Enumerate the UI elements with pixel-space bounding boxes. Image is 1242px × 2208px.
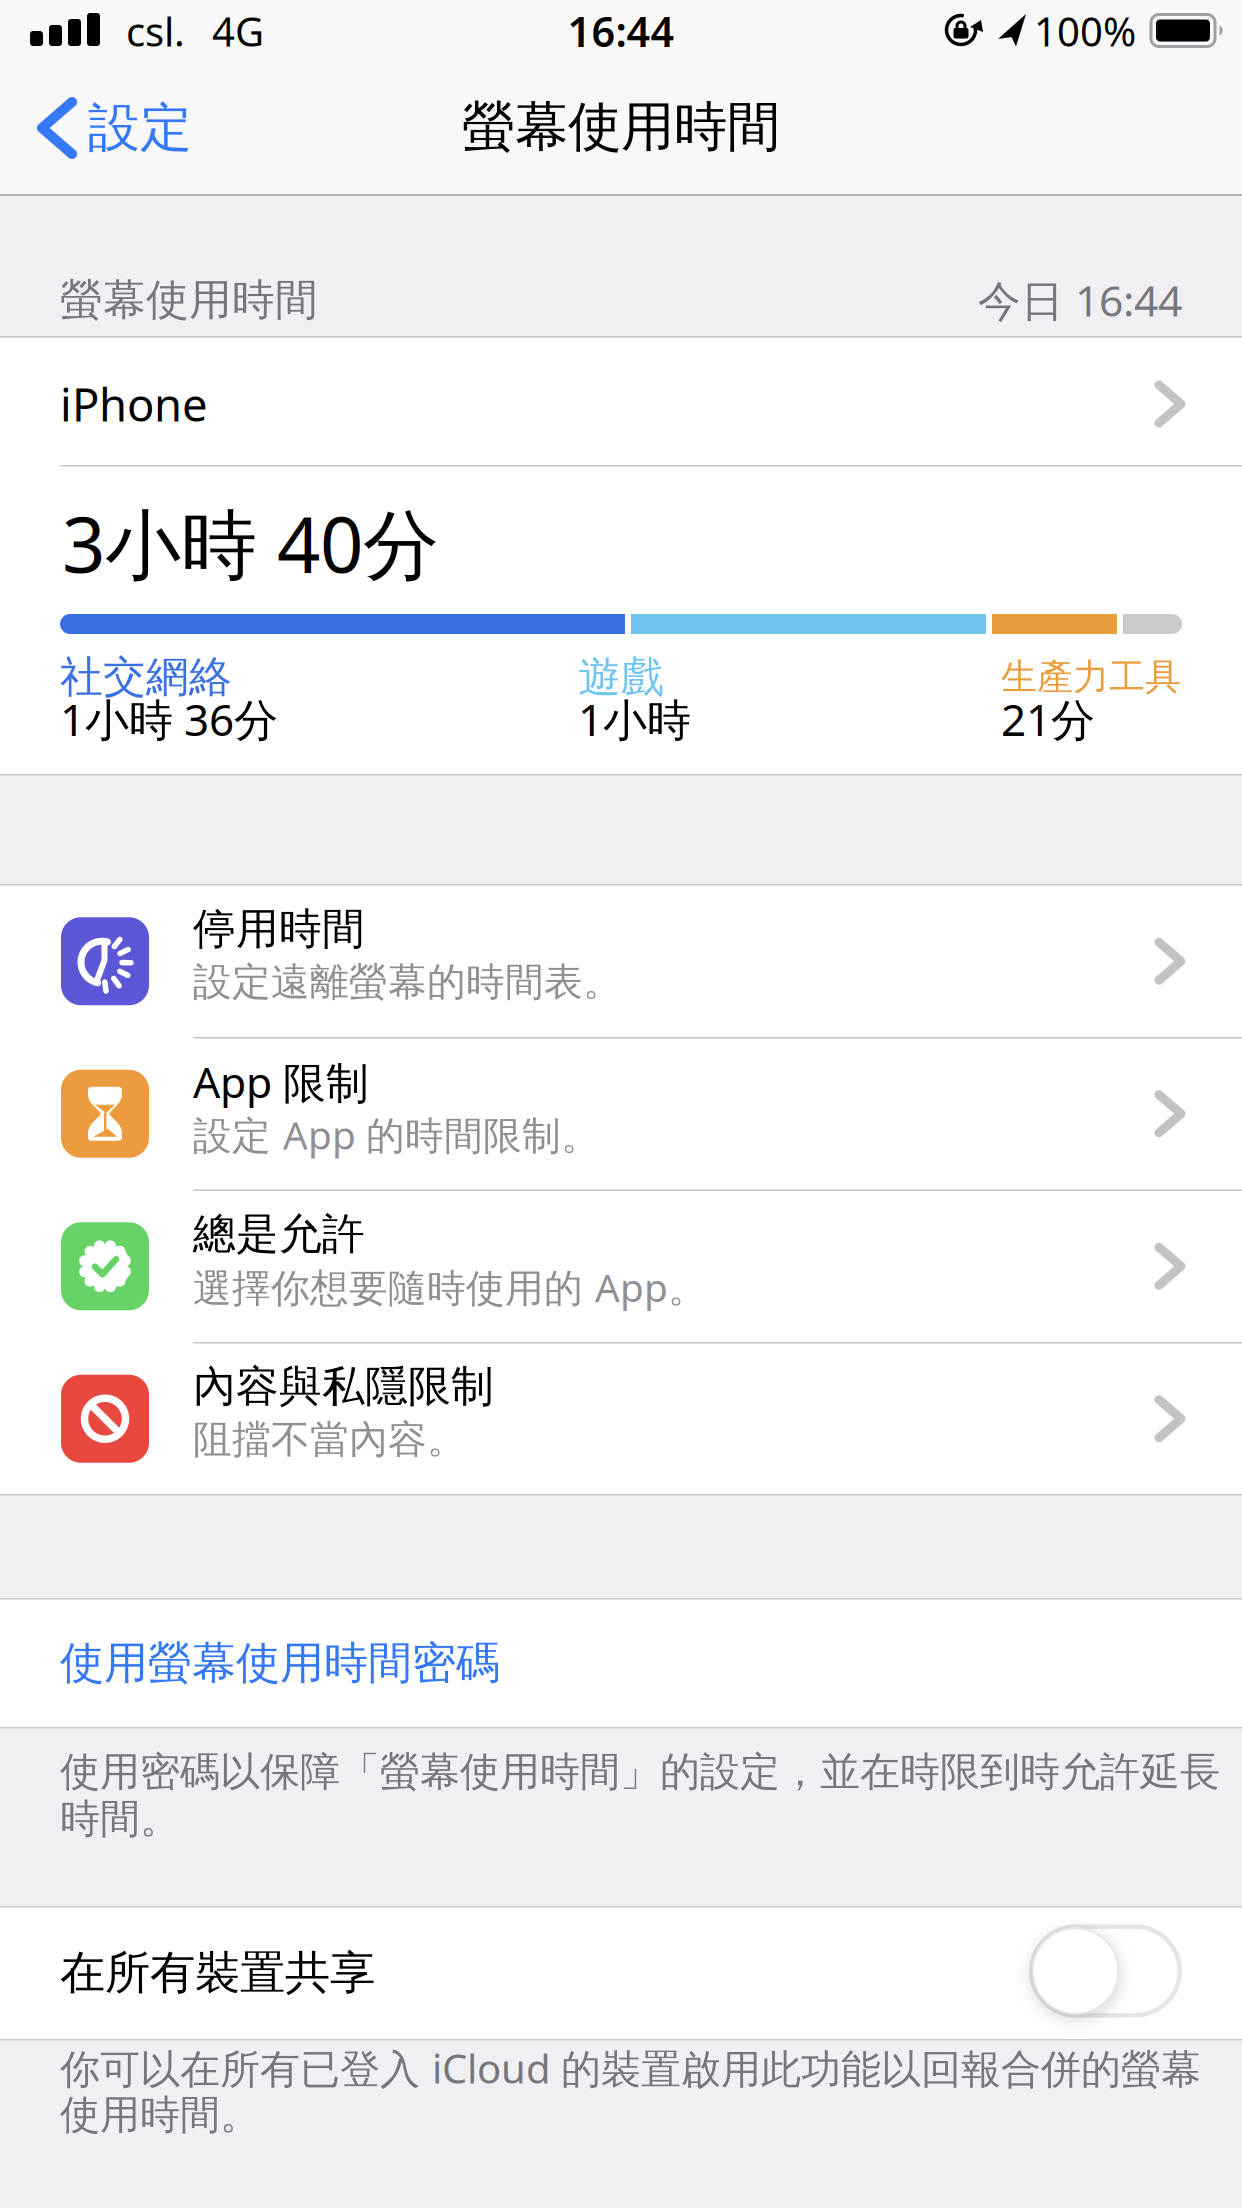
staticText: 選擇你想要隨時使用的 App。 [193,1261,707,1313]
staticText: 100% [1034,4,1136,57]
staticText: 使用螢幕使用時間密碼 [60,1636,500,1690]
staticText: 阻擋不當內容。 [193,1416,466,1463]
staticText: 4G [212,4,264,57]
staticText: 螢幕使用時間 [462,94,780,160]
button[interactable]: 使用螢幕使用時間密碼 [0,1599,1242,1727]
staticText: 螢幕使用時間 [60,274,318,326]
button[interactable]: 內容與私隱限制 [0,1342,1242,1495]
staticText: csl. [126,4,185,57]
staticText: App 限制 [193,1053,369,1110]
staticText: 社交網絡 [60,651,232,703]
button[interactable]: 設定 [0,68,260,188]
staticText: 設定遠離螢幕的時間表。 [193,958,622,1006]
staticText: 使用時間。 [60,2090,260,2139]
staticText: 總是允許 [193,1208,365,1260]
button[interactable]: 在所有裝置共享 [1029,1924,1182,2017]
staticText: 今日 16:44 [978,272,1182,328]
staticText: 1小時 36分 [60,690,278,748]
staticText: 在所有裝置共享 [60,1945,375,2001]
staticText: 21分 [1001,690,1095,748]
staticText: 使用密碼以保障「螢幕使用時間」的設定，並在時限到時允許延長 [60,1747,1220,1796]
staticText: 設定 App 的時間限制。 [193,1109,600,1160]
button[interactable]: App 限制 [0,1037,1242,1190]
staticText: 16:44 [567,4,674,58]
staticText: 遊戲 [578,651,664,703]
staticText: 內容與私隱限制 [193,1360,494,1413]
staticText: 設定 [88,96,192,160]
button[interactable]: iPhone [0,337,1242,465]
button[interactable]: 總是允許 [0,1190,1242,1342]
staticText: 生產力工具 [1001,655,1181,699]
staticText: 1小時 [578,690,691,748]
button[interactable]: 停用時間 [0,885,1242,1037]
staticText: 時間。 [60,1794,180,1843]
staticText: 停用時間 [193,903,365,955]
staticText: iPhone [60,374,208,434]
staticText: 你可以在所有已登入 iCloud 的裝置啟用此功能以回報合併的螢幕 [60,2041,1201,2094]
staticText: 3小時 40分 [62,492,439,593]
